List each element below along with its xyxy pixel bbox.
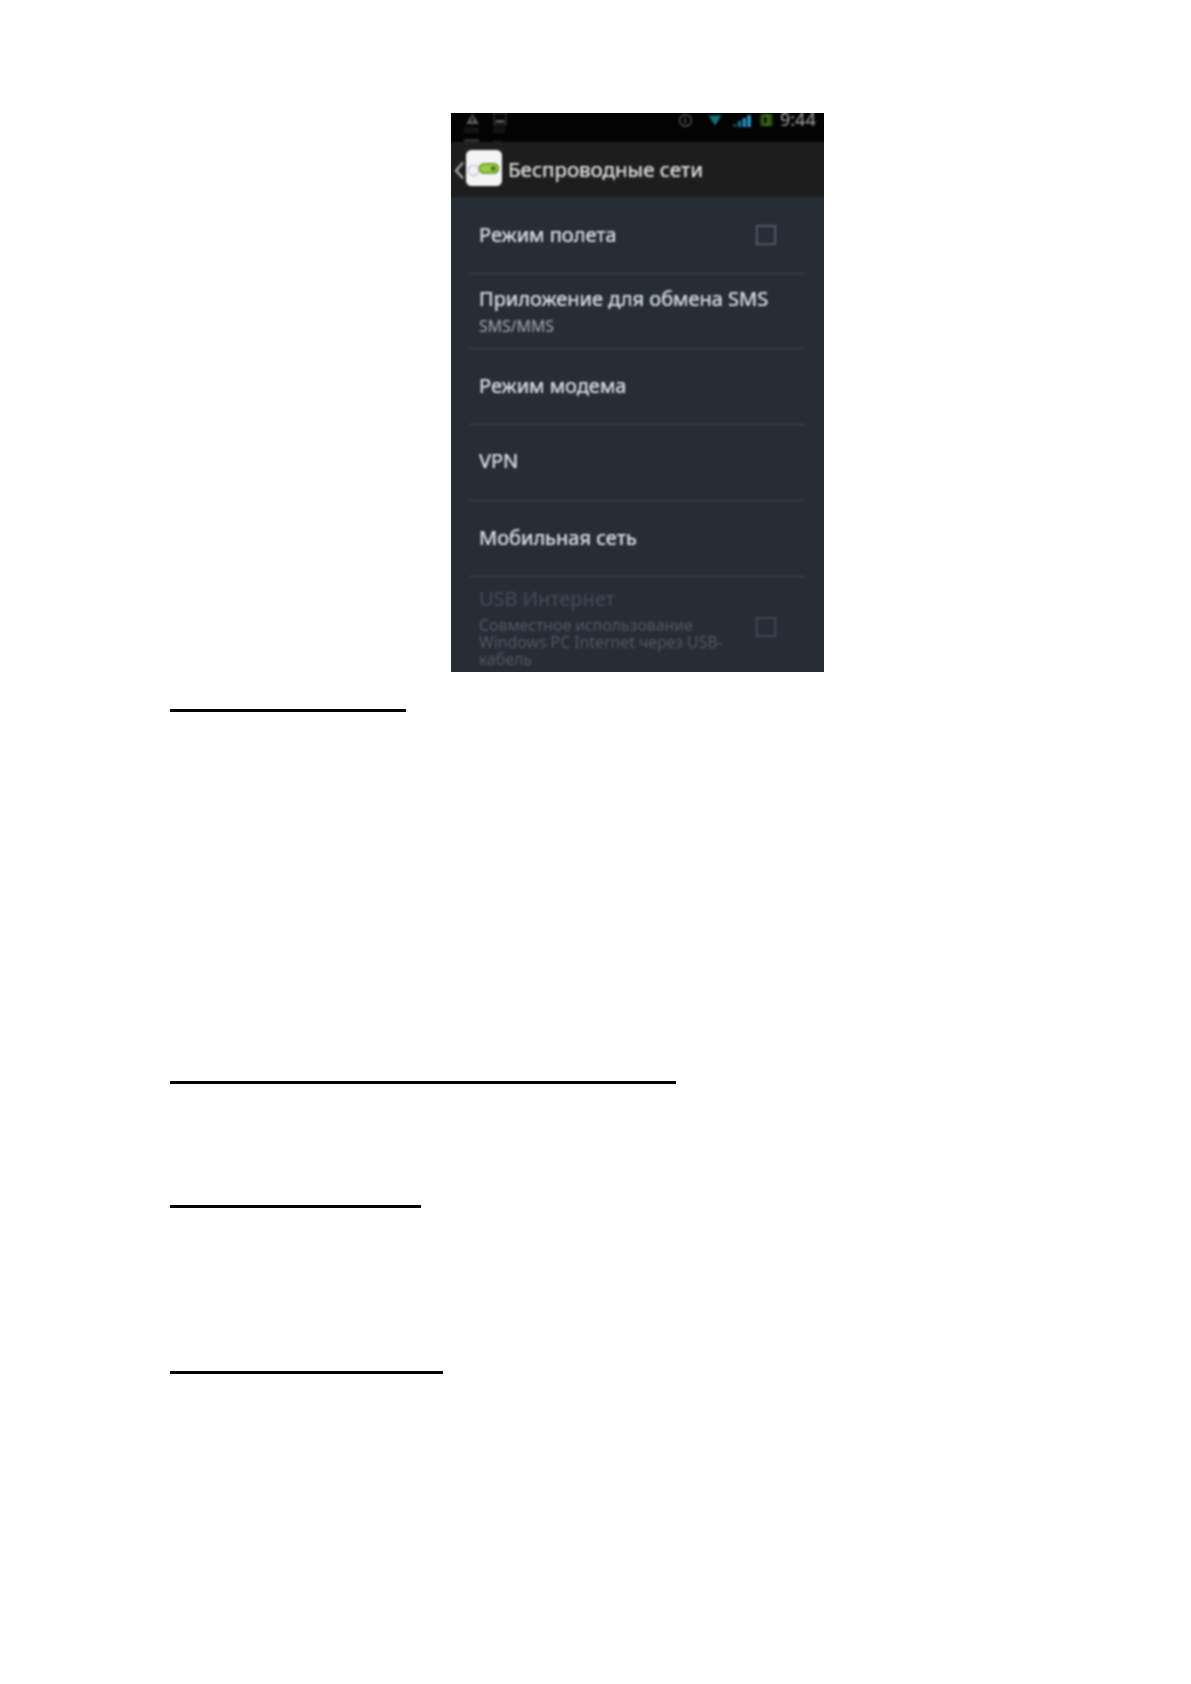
staticText: Режим полета [479, 221, 617, 248]
button[interactable]: Back to Settings [451, 142, 505, 197]
button[interactable]: USB Интернет checkbox [756, 617, 776, 637]
staticText: Совместное использование Windows PC Inte… [479, 614, 723, 670]
button[interactable]: Режим модема [451, 348, 824, 424]
staticText: Режим модема [479, 372, 627, 399]
button[interactable]: Приложение для обмена SMS [451, 273, 824, 348]
staticText: Приложение для обмена SMS [479, 285, 769, 312]
staticText: USB Интернет [479, 585, 615, 612]
staticText: Беспроводные сети [508, 155, 704, 183]
staticText: SMS/MMS [479, 315, 554, 337]
button[interactable]: Режим полета checkbox [756, 225, 776, 245]
staticText: 9:44 [780, 113, 816, 132]
button[interactable]: Режим полета [451, 197, 824, 273]
staticText: Мобильная сеть [479, 524, 637, 551]
button[interactable]: VPN [451, 424, 824, 500]
button[interactable]: Мобильная сеть [451, 500, 824, 576]
staticText: VPN [479, 447, 519, 474]
button[interactable]: USB Интернет [451, 576, 824, 672]
